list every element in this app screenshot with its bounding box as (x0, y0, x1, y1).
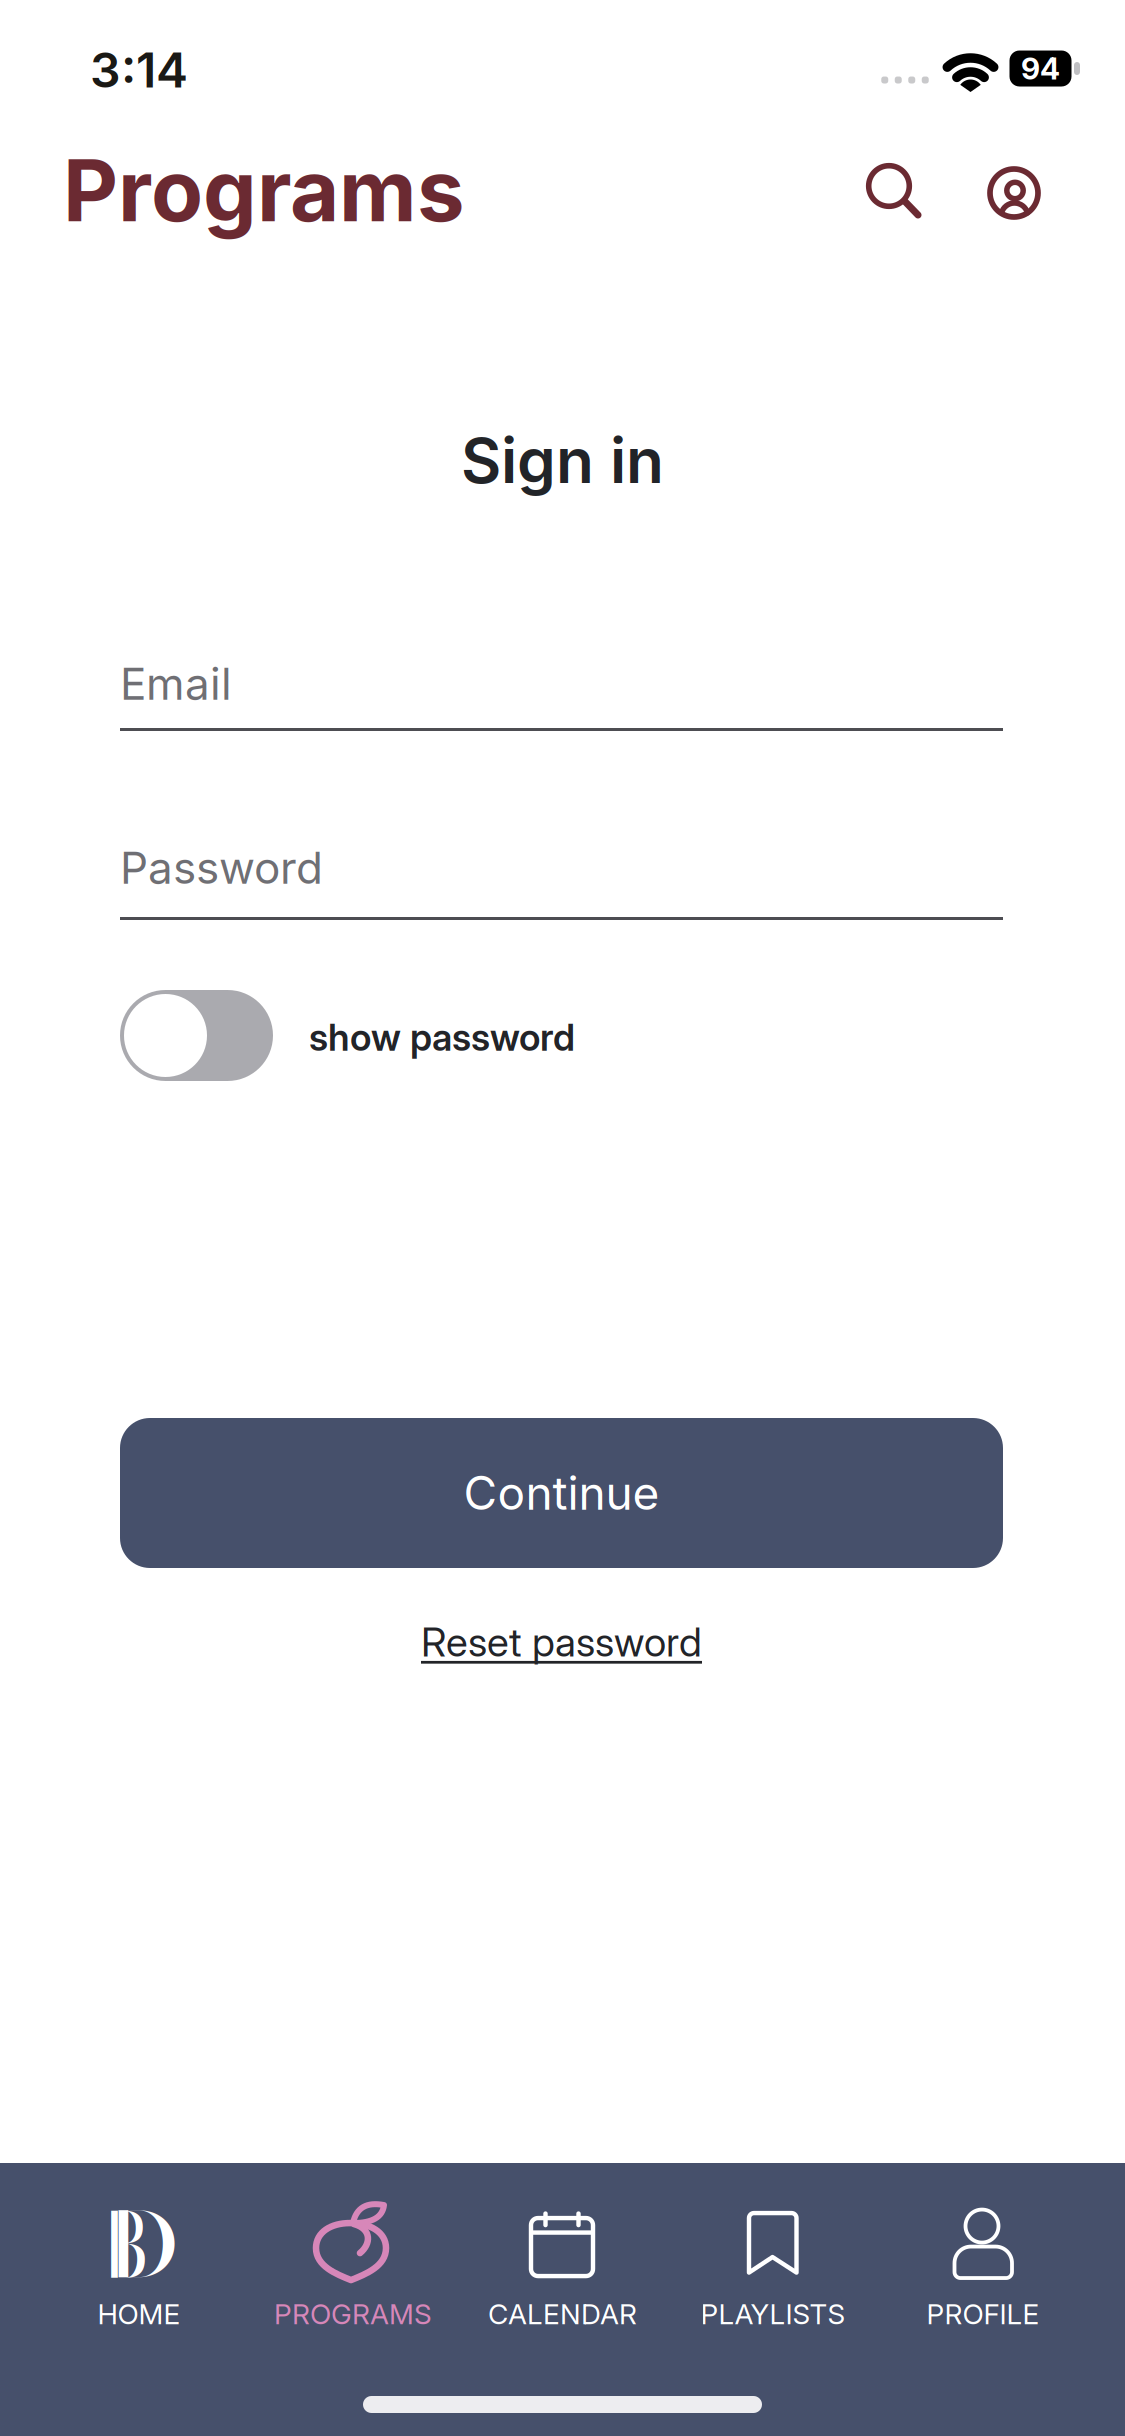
staticText: CALENDAR (488, 2297, 637, 2331)
staticText: PROFILE (926, 2297, 1039, 2331)
staticText: Reset password (421, 1618, 702, 1666)
staticText: Continue (463, 1465, 659, 1521)
staticText: Password (120, 841, 323, 894)
staticText: B (103, 2176, 160, 2314)
staticText: HOME (97, 2297, 180, 2331)
staticText: Sign in (461, 423, 664, 498)
staticText: 3:14 (90, 41, 188, 99)
staticText: PLAYLISTS (700, 2297, 845, 2331)
button[interactable]: PROFILE (876, 2196, 1089, 2331)
staticText: PROGRAMS (274, 2297, 432, 2331)
staticText: show password (309, 1015, 575, 1060)
button[interactable]: Search (859, 157, 925, 223)
button[interactable]: CALENDAR (456, 2196, 669, 2331)
button[interactable]: Reset password (421, 1618, 702, 1666)
button[interactable]: B (32, 2196, 245, 2331)
staticText: 94 (1021, 50, 1060, 87)
button[interactable]: Continue (120, 1418, 1003, 1568)
button[interactable]: PROGRAMS (246, 2196, 459, 2331)
staticText: Email (120, 657, 232, 710)
staticText: D (107, 2176, 170, 2314)
button[interactable]: PLAYLISTS (666, 2196, 879, 2331)
staticText: Programs (63, 139, 465, 242)
button[interactable]: Account (981, 160, 1047, 226)
button[interactable]: show password (120, 990, 273, 1081)
